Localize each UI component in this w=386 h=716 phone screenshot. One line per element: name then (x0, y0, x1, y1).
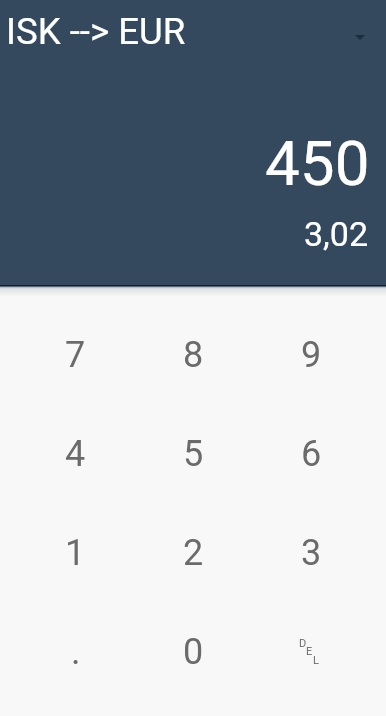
button[interactable]: 9 (252, 306, 370, 404)
button[interactable]: 7 (17, 306, 134, 404)
button[interactable]: Delete (252, 602, 370, 701)
staticText: . (71, 631, 81, 673)
staticText: 450 (265, 127, 370, 200)
staticText: E (306, 645, 313, 658)
staticText: 8 (183, 334, 204, 376)
staticText: 3,02 (304, 214, 369, 254)
button[interactable]: . (17, 602, 134, 701)
button[interactable]: 1 (17, 503, 134, 602)
button[interactable]: ISK --> EUR (0, 0, 386, 56)
staticText: 4 (65, 433, 86, 475)
staticText: 1 (65, 532, 86, 574)
staticText: L (313, 654, 319, 667)
button[interactable]: 2 (134, 503, 252, 602)
staticText: 3 (301, 532, 322, 574)
staticText: 7 (65, 334, 86, 376)
staticText: 2 (183, 532, 204, 574)
staticText: 6 (301, 433, 322, 475)
button[interactable]: 5 (134, 404, 252, 503)
button[interactable]: 4 (17, 404, 134, 503)
staticText: 0 (183, 631, 204, 673)
button[interactable]: 6 (252, 404, 370, 503)
staticText: D (299, 637, 307, 650)
button[interactable]: 0 (134, 602, 252, 701)
button[interactable]: 8 (134, 306, 252, 404)
staticText: 5 (183, 433, 204, 475)
staticText: 9 (301, 334, 322, 376)
staticText: ISK --> EUR (6, 10, 186, 53)
button[interactable]: 3 (252, 503, 370, 602)
button[interactable]: Select currency pair (344, 22, 376, 54)
